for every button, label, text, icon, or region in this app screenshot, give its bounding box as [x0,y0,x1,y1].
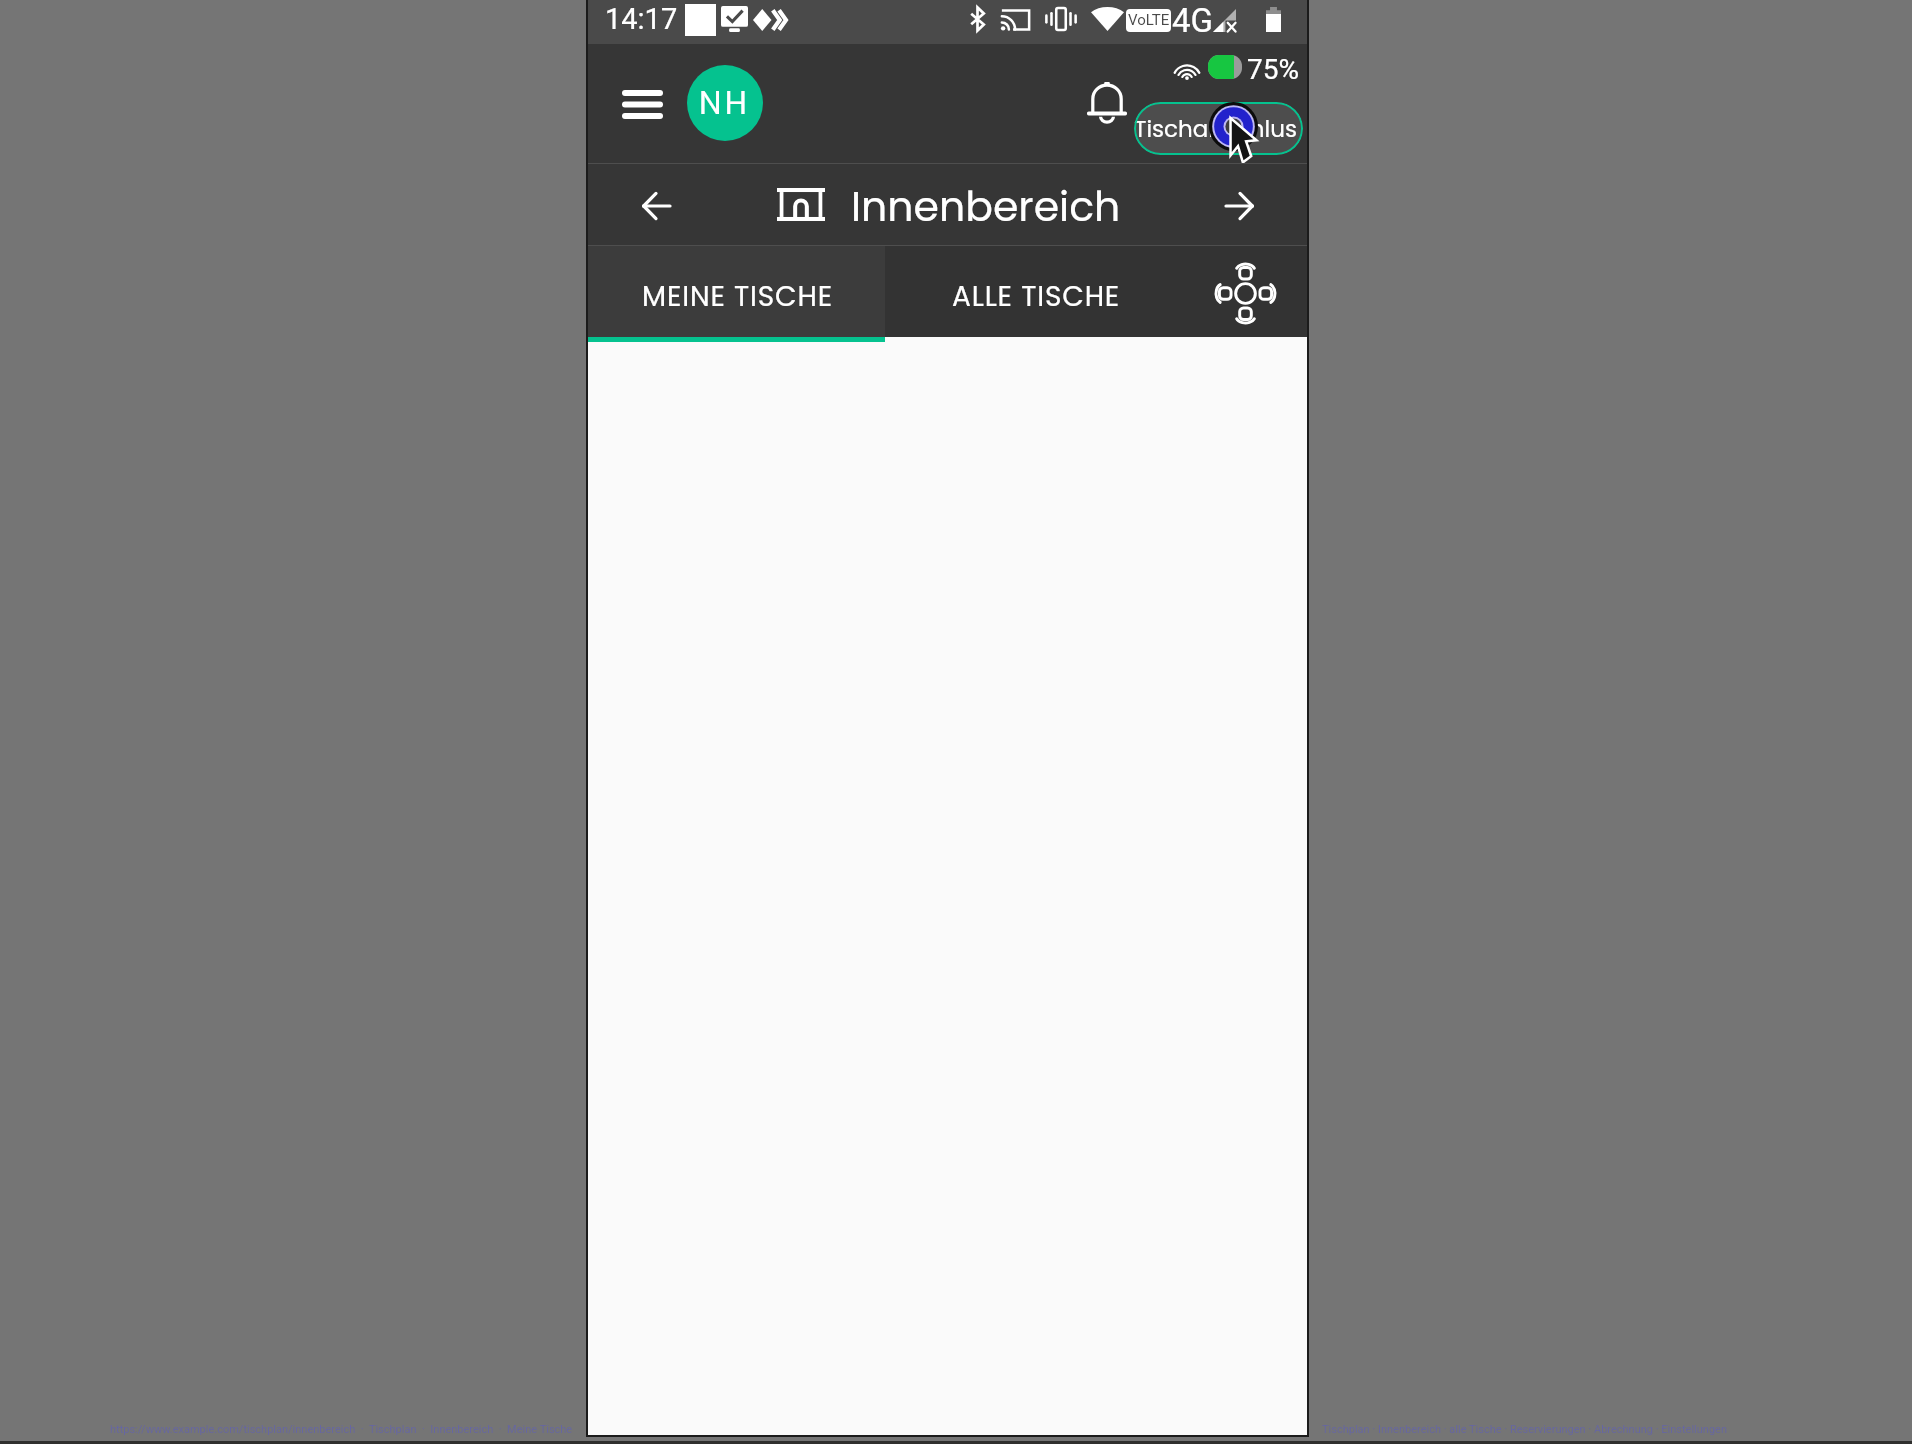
staticText: Tischabschluss [1134,113,1303,145]
staticText: MEINE TISCHE [642,277,833,316]
button[interactable]: Previous area [634,184,678,228]
staticText: NH [699,80,751,125]
staticText: Tischplan · Innenbereich · alle Tische ·… [1322,1423,1727,1436]
staticText: VoLTE [1128,11,1170,29]
button[interactable]: Table layout [1211,246,1307,337]
staticText: https://www.example.com/tischplan/innenb… [110,1423,573,1436]
button[interactable]: Notifications [1075,71,1139,135]
staticText: 4G [1172,1,1214,40]
button[interactable]: Next area [1218,184,1262,228]
staticText: ALLE TISCHE [952,277,1121,316]
button[interactable]: NH [687,65,763,141]
button[interactable]: Tischabschluss [1134,102,1303,155]
button[interactable]: MEINE TISCHE [588,246,885,337]
button[interactable]: Menu [602,77,682,130]
button[interactable]: ALLE TISCHE [885,246,1211,337]
staticText: Innenbereich [851,178,1121,235]
staticText: 75% [1247,53,1299,86]
staticText: 14:17 [605,2,678,36]
